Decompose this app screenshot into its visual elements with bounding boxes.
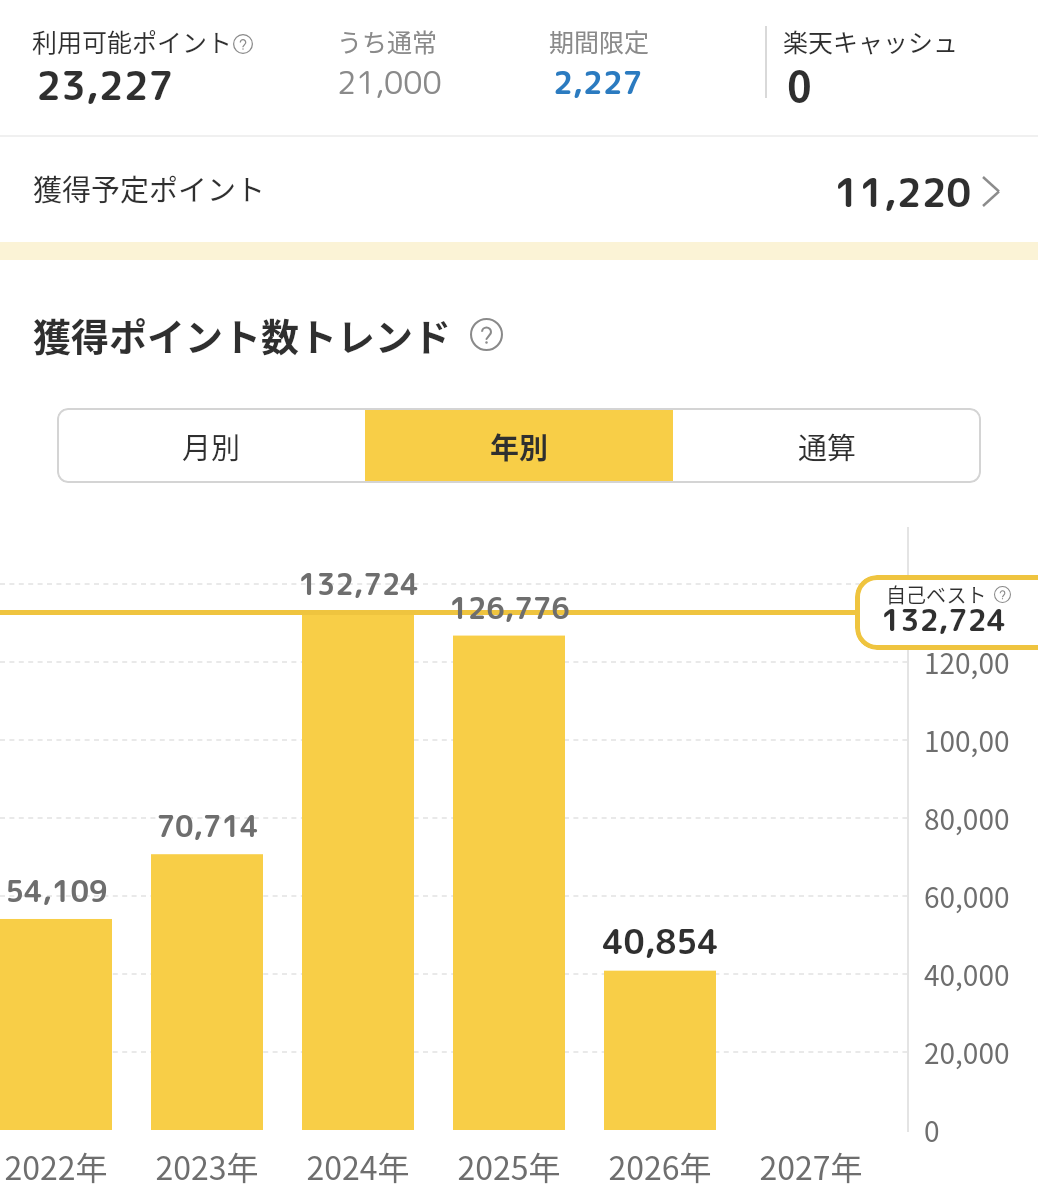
staticText: 40,854 [602,919,719,965]
button[interactable]: 獲得予定ポイント [0,137,1038,242]
staticText: 40,000 [924,954,1009,994]
staticText: 年別 [490,425,549,467]
button[interactable]: 自己ベスト 132,724 [855,575,1038,650]
button[interactable]: 通算 [673,408,981,483]
staticText: 2027年 [759,1143,863,1189]
staticText: 70,714 [156,806,259,846]
staticText: 60,000 [924,876,1009,916]
staticText: 自己ベスト [886,580,987,609]
staticText: 132,724 [298,564,419,604]
staticText: 利用可能ポイント [32,23,233,59]
staticText: 期間限定 [549,23,650,59]
staticText: 132,724 [881,599,1006,641]
button[interactable]: 利用可能ポイントの説明 [233,34,253,54]
staticText: 楽天キャッシュ [783,23,959,59]
staticText: 2024年 [306,1143,410,1189]
button[interactable]: 獲得ポイント数トレンドの説明 [470,318,503,351]
button[interactable]: 月別 [57,408,365,483]
other: 自己ベストの説明 [994,586,1011,603]
staticText: 月別 [182,425,241,467]
staticText: 獲得ポイント数トレンド [33,307,452,362]
staticText: 80,000 [924,798,1009,838]
staticText: 54,109 [5,871,108,911]
staticText: うち通常 [337,23,438,59]
staticText: 0 [787,53,812,114]
staticText: 獲得予定ポイント [33,167,266,209]
staticText: 2023年 [155,1143,259,1189]
staticText: 通算 [798,425,857,467]
staticText: 0 [924,1110,940,1150]
staticText: 100,000 [924,720,1009,760]
staticText: 21,000 [337,61,442,104]
staticText: 20,000 [924,1032,1009,1072]
staticText: 126,776 [449,588,570,628]
staticText: 2022年 [4,1143,108,1189]
button[interactable]: 年別 [365,408,673,483]
staticText: 23,227 [36,58,174,112]
staticText: 120,000 [924,642,1009,682]
staticText: 2026年 [608,1143,712,1189]
staticText: 2025年 [457,1143,561,1189]
staticText: 11,220 [834,165,972,219]
staticText: 2,227 [553,61,643,104]
